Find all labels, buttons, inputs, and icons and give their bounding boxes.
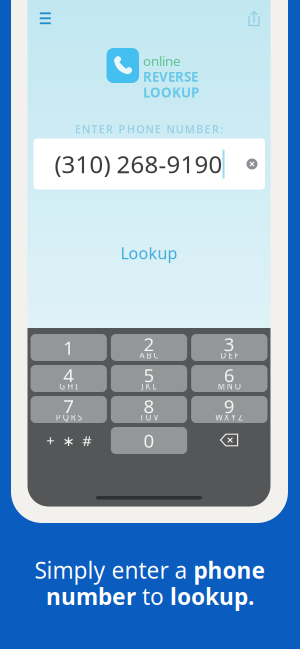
staticText: 6 <box>224 363 235 387</box>
button[interactable]: Lookup <box>27 242 270 264</box>
button[interactable]: 6 <box>191 365 267 392</box>
staticText: D E F <box>220 350 238 361</box>
staticText: M N O <box>218 381 241 392</box>
staticText: 8 <box>143 394 154 418</box>
staticText: G H I <box>59 381 78 392</box>
button[interactable]: Share <box>243 7 265 29</box>
staticText: 7 <box>63 394 74 418</box>
staticText: Simply enter a phone <box>34 555 265 585</box>
staticText: LOOKUP <box>143 83 199 101</box>
button[interactable]: 5 <box>111 365 187 392</box>
staticText: P Q R S <box>56 412 82 423</box>
staticText: 0 <box>143 428 154 453</box>
button[interactable]: Menu <box>34 7 56 29</box>
staticText: online <box>143 52 181 70</box>
staticText: Lookup <box>120 242 177 264</box>
staticText: 2 <box>143 332 154 356</box>
staticText: W X Y Z <box>215 412 243 423</box>
button[interactable]: 2 <box>111 334 187 361</box>
staticText: 4 <box>63 363 74 387</box>
staticText: T U V <box>139 412 158 423</box>
staticText: 5 <box>143 363 154 387</box>
button[interactable]: 0 <box>111 427 187 454</box>
button[interactable]: 7 <box>31 396 107 423</box>
staticText: J K L <box>141 381 156 392</box>
staticText: number to lookup. <box>46 581 254 611</box>
button[interactable]: 3 <box>191 334 267 361</box>
staticText: ENTER PHONE NUMBER: <box>75 122 223 136</box>
button[interactable]: 9 <box>191 396 267 423</box>
staticText: (310) 268-9190 <box>54 148 222 180</box>
button[interactable]: Plus, star, hash <box>31 427 107 454</box>
staticText: A B C <box>139 350 158 361</box>
button[interactable]: Clear text <box>243 155 261 173</box>
staticText: 9 <box>224 394 235 418</box>
staticText: + ∗ # <box>46 431 91 450</box>
staticText: 3 <box>224 332 235 356</box>
button[interactable]: 1 <box>31 334 107 361</box>
button[interactable]: Delete <box>191 427 267 454</box>
staticText: REVERSE <box>143 68 198 85</box>
button[interactable]: 4 <box>31 365 107 392</box>
button[interactable]: 8 <box>111 396 187 423</box>
staticText: 1 <box>63 335 74 360</box>
